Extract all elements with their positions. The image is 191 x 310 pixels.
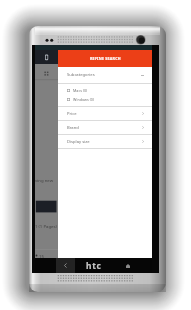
button[interactable]: ving new (35, 50, 58, 258)
staticText: htc (86, 260, 102, 271)
staticText: Subcategories (67, 72, 95, 78)
staticText: Price (67, 111, 77, 117)
button[interactable]: Price (58, 107, 152, 120)
staticText: REFINE SEARCH (90, 56, 121, 61)
staticText: ving new (35, 177, 54, 183)
button[interactable]: Display size (58, 135, 152, 148)
button[interactable]: Home (120, 258, 136, 273)
staticText: Windows (0) (73, 97, 95, 102)
staticText: 1 (1 Pages) (35, 223, 57, 229)
button[interactable]: Subcategories (58, 67, 152, 83)
staticText: 15 (39, 253, 44, 259)
staticText: Macs (0) (73, 88, 88, 93)
button[interactable]: REFINE SEARCH (58, 50, 152, 67)
button[interactable]: Back (56, 258, 75, 273)
button[interactable]: Windows (0) (58, 95, 152, 104)
button[interactable]: Macs (0) (58, 86, 152, 95)
staticText: Brand (67, 125, 79, 131)
staticText: Display size (67, 139, 90, 145)
button[interactable]: Brand (58, 121, 152, 134)
